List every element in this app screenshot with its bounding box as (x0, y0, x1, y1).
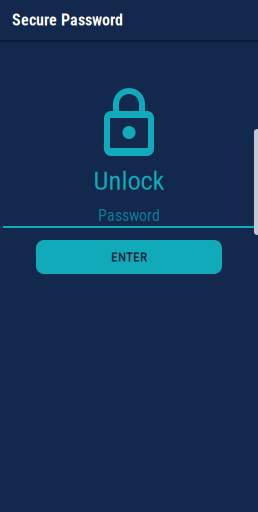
staticText: Unlock (93, 165, 164, 196)
staticText: Secure Password (12, 11, 123, 29)
staticText: ENTER (111, 249, 147, 265)
button[interactable]: ENTER (36, 240, 222, 274)
staticText: Password (98, 206, 160, 225)
